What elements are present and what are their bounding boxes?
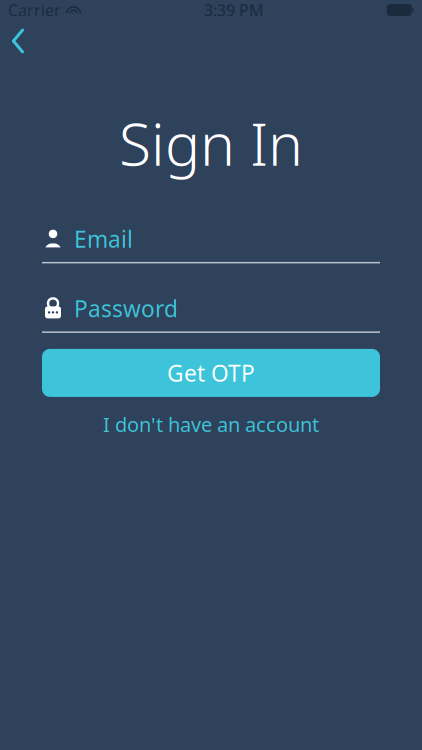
- button[interactable]: Get OTP: [42, 349, 380, 397]
- staticText: Email: [74, 224, 133, 254]
- button[interactable]: I don't have an account: [42, 405, 380, 443]
- staticText: Password: [74, 293, 178, 323]
- staticText: I don't have an account: [103, 411, 319, 437]
- staticText: Sign In: [119, 104, 303, 182]
- staticText: Get OTP: [167, 358, 255, 388]
- staticText: Carrier: [8, 0, 61, 21]
- button[interactable]: Back: [0, 21, 40, 61]
- staticText: 3:39 PM: [204, 0, 264, 21]
